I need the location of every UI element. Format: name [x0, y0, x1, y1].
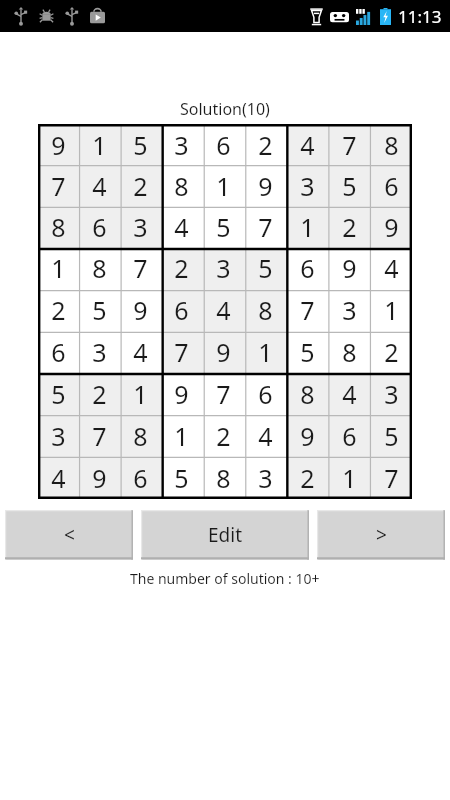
button[interactable]: 4 — [328, 373, 370, 415]
button[interactable]: 3 — [328, 289, 370, 331]
button[interactable]: 3 — [79, 331, 120, 373]
button[interactable]: 4 — [161, 206, 202, 247]
button[interactable]: 9 — [120, 289, 161, 331]
button[interactable]: 2 — [286, 457, 328, 499]
button[interactable]: 7 — [370, 457, 412, 499]
button[interactable]: 4 — [244, 415, 286, 457]
button[interactable]: 2 — [79, 373, 120, 415]
button[interactable]: 9 — [161, 373, 202, 415]
staticText: 5 — [174, 461, 189, 495]
staticText: 5 — [300, 335, 315, 369]
button[interactable]: 7 — [286, 289, 328, 331]
button[interactable]: 3 — [120, 206, 161, 247]
button[interactable]: 6 — [286, 247, 328, 289]
button[interactable]: 6 — [328, 415, 370, 457]
button[interactable]: 8 — [370, 124, 412, 165]
button[interactable]: 5 — [286, 331, 328, 373]
button[interactable]: 5 — [79, 289, 120, 331]
button[interactable]: 3 — [286, 165, 328, 206]
staticText: 8 — [133, 419, 148, 453]
button[interactable]: 1 — [38, 247, 79, 289]
staticText: 3 — [384, 377, 399, 411]
button[interactable]: 4 — [120, 331, 161, 373]
button[interactable]: 7 — [202, 373, 244, 415]
button[interactable]: 1 — [161, 415, 202, 457]
button[interactable]: 9 — [244, 165, 286, 206]
staticText: 9 — [174, 377, 189, 411]
button[interactable]: 7 — [161, 331, 202, 373]
button[interactable]: 8 — [244, 289, 286, 331]
staticText: 5 — [216, 210, 231, 244]
button[interactable]: 5 — [38, 373, 79, 415]
button[interactable]: 8 — [328, 331, 370, 373]
button[interactable]: 9 — [328, 247, 370, 289]
button[interactable]: Previous solution — [5, 510, 133, 560]
button[interactable]: 4 — [286, 124, 328, 165]
button[interactable]: 6 — [38, 331, 79, 373]
button[interactable]: Edit — [141, 510, 309, 560]
button[interactable]: 2 — [120, 165, 161, 206]
button[interactable]: 4 — [370, 247, 412, 289]
button[interactable]: 6 — [370, 165, 412, 206]
staticText: 9 — [216, 335, 231, 369]
button[interactable]: 3 — [202, 247, 244, 289]
button[interactable]: 3 — [370, 373, 412, 415]
button[interactable]: 1 — [79, 124, 120, 165]
button[interactable]: 2 — [370, 331, 412, 373]
button[interactable]: 3 — [244, 457, 286, 499]
button[interactable]: 2 — [328, 206, 370, 247]
button[interactable]: 7 — [120, 247, 161, 289]
button[interactable]: 5 — [120, 124, 161, 165]
staticText: 2 — [258, 128, 273, 162]
button[interactable]: 5 — [370, 415, 412, 457]
staticText: 7 — [92, 419, 107, 453]
button[interactable]: 9 — [286, 415, 328, 457]
staticText: 4 — [92, 169, 107, 203]
button[interactable]: 7 — [79, 415, 120, 457]
button[interactable]: 8 — [79, 247, 120, 289]
button[interactable]: 5 — [202, 206, 244, 247]
button[interactable]: 6 — [161, 289, 202, 331]
button[interactable]: 4 — [79, 165, 120, 206]
button[interactable]: 1 — [328, 457, 370, 499]
button[interactable]: 2 — [161, 247, 202, 289]
button[interactable]: 9 — [370, 206, 412, 247]
button[interactable]: 1 — [286, 206, 328, 247]
button[interactable]: 6 — [244, 373, 286, 415]
button[interactable]: 1 — [120, 373, 161, 415]
button[interactable]: 2 — [202, 415, 244, 457]
staticText: 3 — [216, 251, 231, 285]
button[interactable]: 8 — [161, 165, 202, 206]
button[interactable]: 9 — [202, 331, 244, 373]
button[interactable]: 8 — [38, 206, 79, 247]
button[interactable]: 7 — [38, 165, 79, 206]
button[interactable]: 5 — [244, 247, 286, 289]
button[interactable]: 4 — [38, 457, 79, 499]
button[interactable]: Next solution — [317, 510, 445, 560]
button[interactable]: 3 — [38, 415, 79, 457]
staticText: 1 — [300, 210, 315, 244]
button[interactable]: 9 — [38, 124, 79, 165]
button[interactable]: 8 — [202, 457, 244, 499]
button[interactable]: 9 — [79, 457, 120, 499]
button[interactable]: 7 — [244, 206, 286, 247]
staticText: 6 — [216, 128, 231, 162]
button[interactable]: 8 — [286, 373, 328, 415]
button[interactable]: 2 — [38, 289, 79, 331]
staticText: 6 — [258, 377, 273, 411]
button[interactable]: 3 — [161, 124, 202, 165]
button[interactable]: 4 — [202, 289, 244, 331]
button[interactable]: 1 — [202, 165, 244, 206]
button[interactable]: 6 — [202, 124, 244, 165]
button[interactable]: 5 — [328, 165, 370, 206]
staticText: 4 — [174, 210, 189, 244]
button[interactable]: 2 — [244, 124, 286, 165]
button[interactable]: 7 — [328, 124, 370, 165]
button[interactable]: 1 — [370, 289, 412, 331]
button[interactable]: 8 — [120, 415, 161, 457]
button[interactable]: 6 — [79, 206, 120, 247]
button[interactable]: 1 — [244, 331, 286, 373]
button[interactable]: 5 — [161, 457, 202, 499]
staticText: 11:13 — [398, 5, 442, 28]
button[interactable]: 6 — [120, 457, 161, 499]
